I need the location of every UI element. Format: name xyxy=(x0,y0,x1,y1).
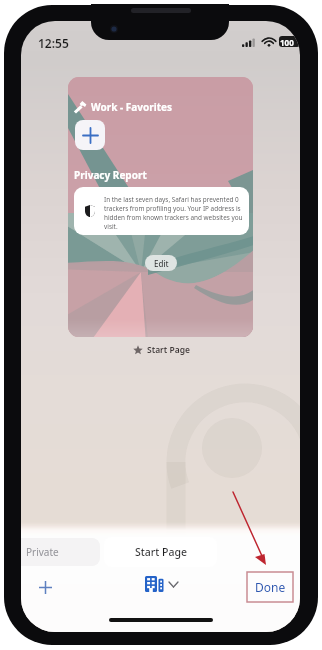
staticText: Edit xyxy=(154,258,169,269)
button[interactable]: New tab xyxy=(30,572,60,602)
staticText: Privacy Report xyxy=(74,168,147,182)
staticText: Private xyxy=(26,545,59,559)
staticText: 12:55 xyxy=(38,35,69,51)
button[interactable]: Private xyxy=(21,538,100,566)
staticText: In the last seven days, Safari has preve… xyxy=(104,195,244,231)
button[interactable]: Work - Favorites xyxy=(68,77,253,337)
staticText: Done xyxy=(255,579,286,595)
button[interactable]: Start Page xyxy=(104,537,217,567)
staticText: Start Page xyxy=(147,344,190,356)
button[interactable]: New tab xyxy=(75,120,105,150)
button[interactable]: Done xyxy=(247,572,293,602)
button[interactable]: Tab groups xyxy=(145,576,178,592)
staticText: Work - Favorites xyxy=(91,100,173,114)
staticText: Start Page xyxy=(135,545,187,559)
button[interactable]: Edit xyxy=(145,255,177,271)
staticText: 100 xyxy=(280,37,294,48)
